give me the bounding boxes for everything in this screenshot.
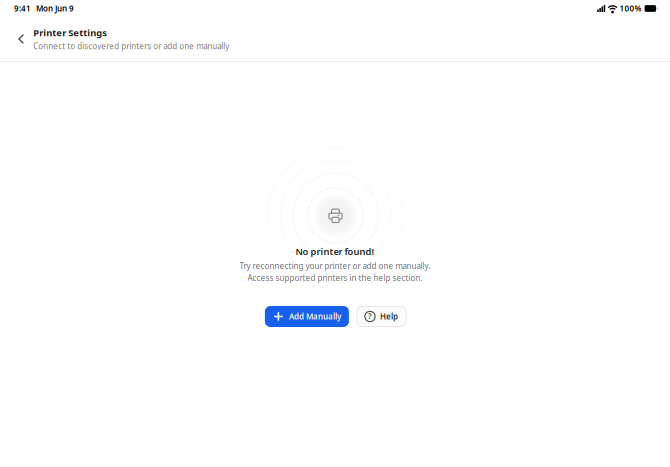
- button[interactable]: ?: [357, 306, 406, 326]
- staticText: Help: [380, 311, 398, 322]
- staticText: 9:41: [14, 3, 31, 14]
- staticText: 100%: [619, 3, 641, 14]
- staticText: No printer found!: [295, 245, 374, 258]
- button[interactable]: Add Manually: [265, 306, 349, 327]
- staticText: Access supported printers in the help se…: [247, 273, 422, 283]
- staticText: Add Manually: [289, 311, 341, 322]
- staticText: Try reconnecting your printer or add one…: [239, 261, 430, 271]
- button[interactable]: Back: [0, 27, 33, 51]
- staticText: Mon Jun 9: [36, 3, 74, 14]
- staticText: Printer Settings: [33, 26, 107, 39]
- staticText: ?: [368, 311, 372, 321]
- staticText: Connect to discovered printers or add on…: [33, 41, 229, 51]
